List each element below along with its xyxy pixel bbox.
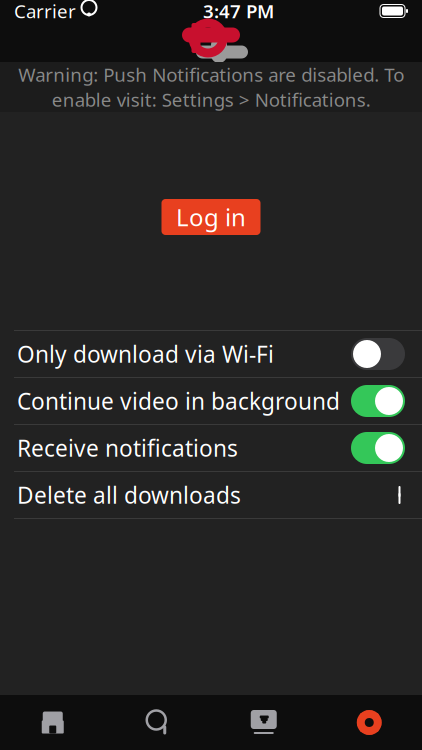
button[interactable]: Settings — [316, 698, 422, 747]
button[interactable]: Only download via Wi-Fi — [0, 331, 422, 377]
staticText: Receive notifications — [17, 433, 238, 463]
staticText: 3:47 PM — [203, 0, 274, 23]
staticText: Carrier — [14, 0, 76, 23]
button[interactable]: Delete all downloads — [0, 472, 422, 518]
staticText: Warning: Push Notifications are disabled… — [18, 62, 404, 112]
button[interactable]: Continue video in background — [0, 378, 422, 424]
staticText: Delete all downloads — [17, 480, 241, 510]
button[interactable]: Receive notifications — [0, 425, 422, 471]
button[interactable]: Log in — [161, 199, 260, 235]
staticText: Log in — [176, 201, 246, 233]
button[interactable]: Search — [105, 698, 211, 747]
button[interactable]: Home — [0, 698, 105, 747]
staticText: Continue video in background — [17, 386, 340, 416]
staticText: Only download via Wi-Fi — [17, 339, 274, 369]
button[interactable]: Videos — [211, 698, 316, 747]
